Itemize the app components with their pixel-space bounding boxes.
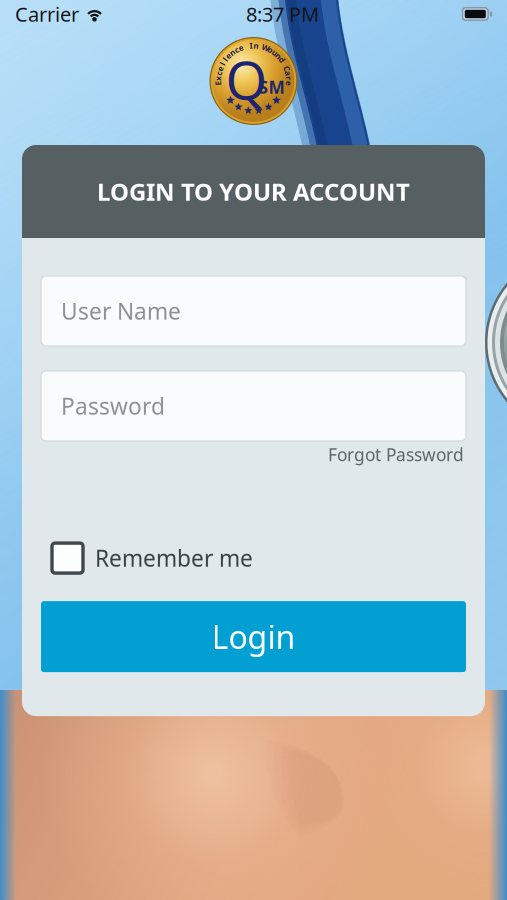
staticText: Password	[61, 391, 165, 421]
staticText: LOGIN TO YOUR ACCOUNT	[97, 176, 410, 207]
staticText: l	[221, 59, 223, 69]
staticText: u	[272, 47, 277, 58]
staticText: User Name	[61, 296, 181, 326]
staticText	[245, 41, 247, 52]
staticText: x	[216, 73, 221, 84]
staticText: C	[284, 63, 289, 74]
staticText: e	[218, 63, 223, 74]
staticText: Login	[211, 615, 295, 658]
staticText: Q	[225, 44, 267, 114]
staticText: Remember me	[95, 543, 253, 573]
staticText: W	[262, 42, 270, 53]
staticText	[284, 59, 286, 69]
staticText: e	[239, 42, 244, 53]
staticText: a	[286, 68, 291, 79]
button[interactable]: Remember me	[52, 543, 253, 573]
staticText: SM	[258, 75, 284, 98]
staticText: c	[217, 68, 221, 79]
staticText: d	[279, 54, 284, 65]
staticText: e	[286, 78, 291, 89]
staticText: n	[276, 50, 281, 61]
button[interactable]: Forgot Password	[328, 443, 464, 466]
staticText: e	[226, 50, 231, 61]
staticText: n	[253, 40, 258, 51]
button[interactable]: User Name	[41, 276, 466, 346]
staticText: o	[268, 44, 273, 55]
staticText: c	[234, 44, 238, 55]
staticText: l	[224, 54, 226, 65]
staticText: E	[216, 78, 220, 89]
staticText: I	[249, 40, 252, 51]
staticText: 8:37 PM	[246, 1, 319, 27]
button[interactable]: Login	[41, 601, 466, 672]
staticText: Forgot Password	[328, 443, 464, 466]
staticText: n	[230, 47, 235, 58]
staticText: r	[287, 73, 291, 84]
staticText	[260, 41, 262, 52]
button[interactable]: Password	[41, 371, 466, 441]
staticText: Carrier	[15, 1, 79, 27]
